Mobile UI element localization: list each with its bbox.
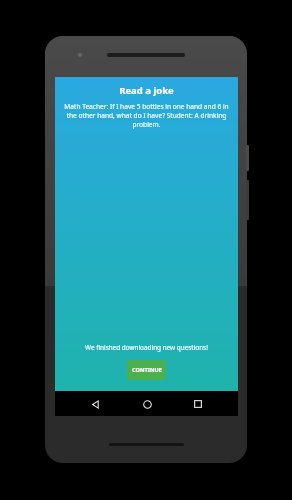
staticText: CONTINUE <box>132 366 162 374</box>
button[interactable]: CONTINUE <box>127 360 166 380</box>
staticText: Read a joke <box>59 84 234 97</box>
button[interactable]: Recent apps <box>187 393 209 415</box>
button[interactable]: Home <box>136 393 158 415</box>
button[interactable]: Back <box>84 393 106 415</box>
staticText: Math Teacher: If I have 5 bottles in one… <box>60 102 233 129</box>
staticText: We finished downloading new questions! <box>59 343 234 352</box>
